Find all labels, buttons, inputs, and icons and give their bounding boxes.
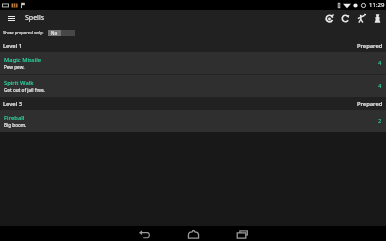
- staticText: Prepared: [357, 42, 383, 50]
- staticText: Show prepared only:: [3, 30, 44, 36]
- staticText: Magic Missile: [4, 56, 42, 64]
- staticText: Spells: [25, 13, 45, 23]
- button[interactable]: Open navigation drawer: [0, 10, 22, 26]
- button[interactable]: Recent apps: [236, 227, 249, 241]
- staticText: Level 1: [3, 42, 23, 50]
- button[interactable]: Home: [187, 227, 200, 241]
- button[interactable]: Fireball: [0, 110, 386, 132]
- staticText: Get out of jail free.: [4, 87, 45, 93]
- staticText: 4: [378, 59, 382, 67]
- staticText: Prepared: [357, 100, 383, 108]
- staticText: Big boom.: [4, 122, 27, 128]
- staticText: Fireball: [4, 114, 25, 122]
- staticText: 2: [378, 117, 382, 125]
- staticText: Pew pew.: [4, 64, 25, 70]
- staticText: 4: [378, 82, 382, 90]
- button[interactable]: Magic Missile: [0, 52, 386, 74]
- staticText: No: [51, 30, 58, 36]
- button[interactable]: Back: [138, 227, 151, 241]
- button[interactable]: Character: [353, 10, 369, 26]
- button[interactable]: Spirit Walk: [0, 75, 386, 97]
- button[interactable]: Roll dice: [321, 10, 337, 26]
- staticText: 11:29: [369, 1, 385, 9]
- staticText: Level 3: [3, 100, 23, 108]
- button[interactable]: Spell book: [369, 10, 385, 26]
- button[interactable]: Reset: [337, 10, 353, 26]
- button[interactable]: No: [48, 30, 75, 36]
- staticText: Spirit Walk: [4, 79, 34, 87]
